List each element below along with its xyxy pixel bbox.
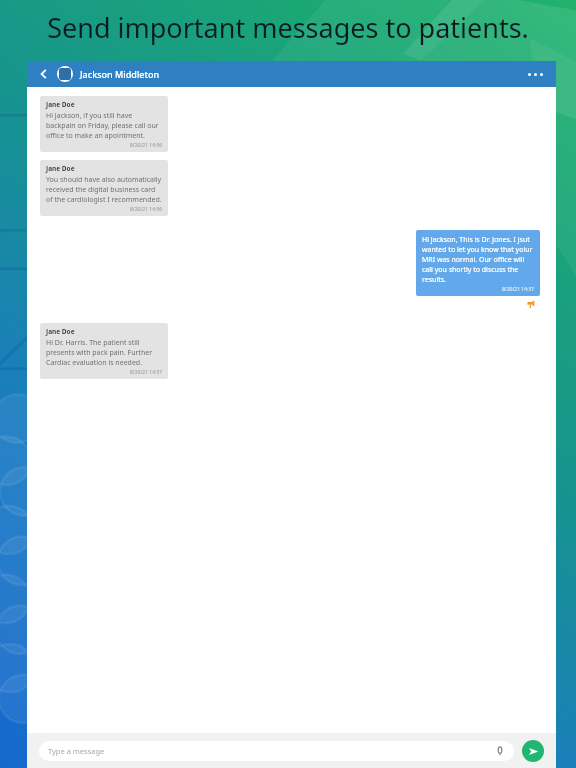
staticText: Hi Jackson, This is Dr. Jones. I jsut wa… (422, 235, 535, 285)
staticText: You should have also automatically recei… (46, 175, 163, 205)
button[interactable]: Type a message (39, 741, 514, 761)
staticText: 8/20/21 14:56 (130, 206, 163, 213)
staticText: Send important messages to patients. (47, 9, 529, 46)
button[interactable]: Jane Doe (40, 323, 168, 379)
button[interactable]: Hi Jackson, This is Dr. Jones. I jsut wa… (416, 230, 540, 296)
button[interactable]: Jane Doe (40, 160, 168, 216)
button[interactable]: Send (522, 740, 544, 762)
staticText: 8/20/21 14:57 (502, 286, 535, 293)
staticText: Hi Dr. Harris. The patient still present… (46, 338, 163, 368)
staticText: Hi Jackson, if you still have backpain o… (46, 111, 163, 141)
staticText: Jane Doe (46, 327, 75, 336)
button[interactable]: Jane Doe (40, 96, 168, 152)
button[interactable]: More options (524, 67, 547, 82)
staticText: 8/20/21 14:56 (130, 142, 163, 149)
button[interactable]: Contact avatar (57, 66, 73, 82)
button[interactable]: Attach file (495, 746, 505, 756)
staticText: Type a message (48, 746, 105, 756)
other: Delivered (527, 300, 536, 309)
staticText: Jackson Middleton (80, 68, 160, 80)
staticText: 8/20/21 14:57 (130, 369, 163, 376)
staticText: Jane Doe (46, 100, 75, 109)
button[interactable]: Back (36, 66, 52, 82)
staticText: Jane Doe (46, 164, 75, 173)
